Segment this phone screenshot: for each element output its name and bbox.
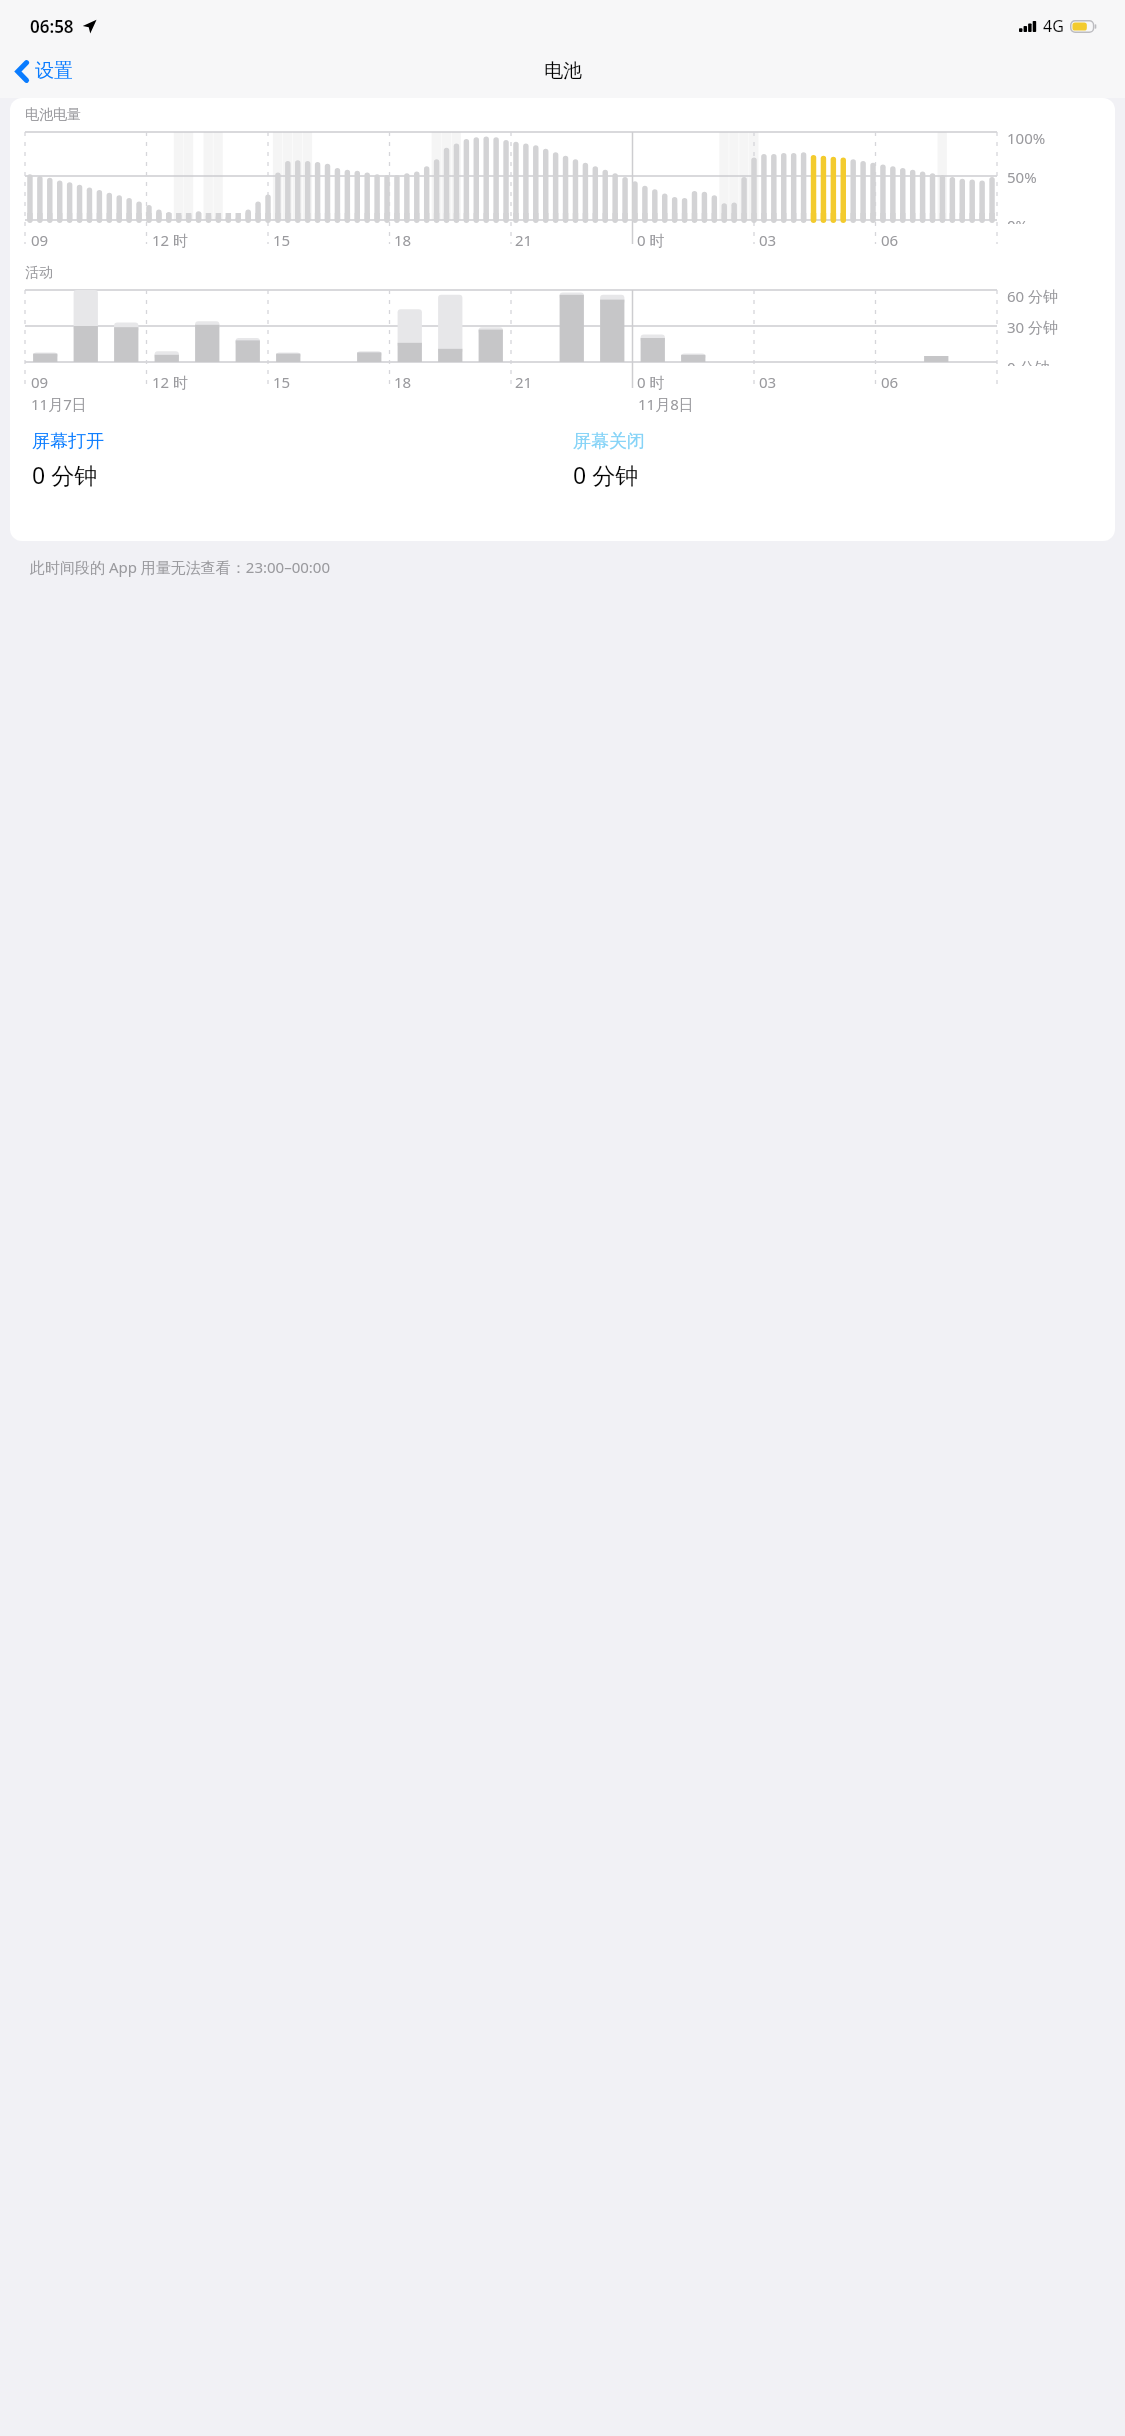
staticText: 设置 xyxy=(35,59,73,83)
staticText: 03 xyxy=(759,230,777,250)
staticText: 4G xyxy=(1043,15,1064,37)
staticText: 11月7日 xyxy=(31,394,87,414)
staticText: 100% xyxy=(1007,128,1046,148)
staticText: 15 xyxy=(273,372,291,392)
staticText: 0 分钟 xyxy=(573,459,639,490)
staticText: 此时间段的 App 用量无法查看：23:00–00:00 xyxy=(30,557,331,577)
staticText: 0 分钟 xyxy=(1007,357,1050,366)
other: Back xyxy=(15,60,28,83)
staticText: 屏幕关闭 xyxy=(573,430,645,453)
staticText: 12 时 xyxy=(152,230,189,250)
staticText: 06 xyxy=(881,230,899,250)
staticText: 21 xyxy=(515,372,533,392)
staticText: 屏幕打开 xyxy=(32,430,104,453)
staticText: 18 xyxy=(394,230,412,250)
staticText: 03 xyxy=(759,372,777,392)
staticText: 50% xyxy=(1007,167,1037,187)
staticText: 0 分钟 xyxy=(32,459,98,490)
staticText: 0 时 xyxy=(637,372,665,392)
staticText: 电池 xyxy=(544,59,582,83)
button[interactable]: Back xyxy=(0,44,85,98)
staticText: 21 xyxy=(515,230,533,250)
staticText: 0 时 xyxy=(637,230,665,250)
staticText: 06 xyxy=(881,372,899,392)
button[interactable]: 屏幕关闭 xyxy=(573,430,1115,490)
staticText: 18 xyxy=(394,372,412,392)
staticText: 15 xyxy=(273,230,291,250)
staticText: 06:58 xyxy=(30,15,74,38)
staticText: 60 分钟 xyxy=(1007,286,1059,306)
staticText: 活动 xyxy=(25,264,53,282)
staticText: 30 分钟 xyxy=(1007,317,1059,337)
staticText: 0% xyxy=(1007,215,1029,224)
staticText: 电池电量 xyxy=(25,106,81,124)
staticText: 11月8日 xyxy=(638,394,694,414)
button[interactable]: 屏幕打开 xyxy=(32,430,573,490)
staticText: 09 xyxy=(31,230,49,250)
staticText: 12 时 xyxy=(152,372,189,392)
staticText: 09 xyxy=(31,372,49,392)
